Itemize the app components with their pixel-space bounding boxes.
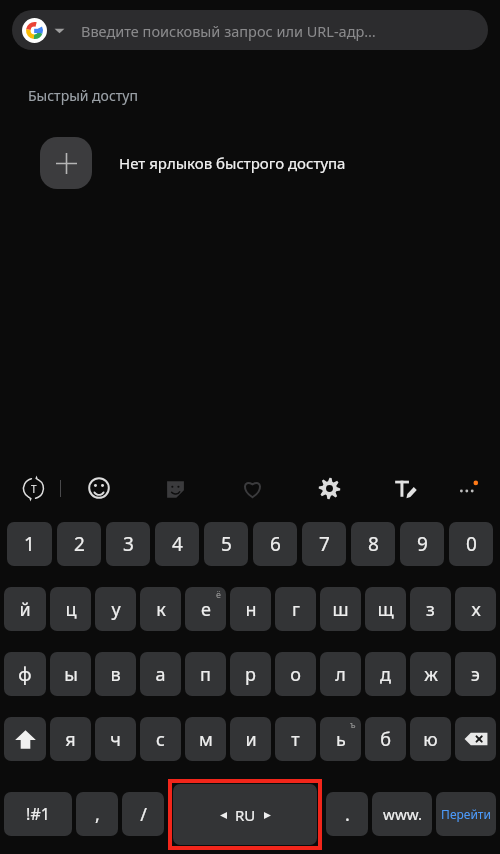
- button[interactable]: 7: [302, 522, 346, 566]
- staticText: п: [200, 662, 211, 687]
- button[interactable]: !#1: [4, 792, 72, 836]
- staticText: 6: [270, 531, 281, 557]
- button[interactable]: Настройки: [310, 468, 348, 508]
- button[interactable]: Добавить ярлык: [40, 137, 92, 189]
- button[interactable]: Перейти: [436, 792, 496, 836]
- button[interactable]: д: [365, 652, 406, 696]
- button[interactable]: е: [185, 587, 226, 631]
- button[interactable]: г: [275, 587, 316, 631]
- button[interactable]: ,: [76, 792, 118, 836]
- button[interactable]: 5: [204, 522, 248, 566]
- staticText: ,: [95, 802, 100, 827]
- button[interactable]: к: [140, 587, 181, 631]
- button[interactable]: 3: [106, 522, 150, 566]
- button[interactable]: а: [140, 652, 181, 696]
- staticText: з: [426, 597, 435, 622]
- staticText: /: [140, 802, 147, 827]
- button[interactable]: у: [95, 587, 136, 631]
- button[interactable]: щ: [365, 587, 406, 631]
- button[interactable]: в: [95, 652, 136, 696]
- staticText: Нет ярлыков быстрого доступа: [119, 153, 346, 173]
- button[interactable]: Редактор текста: [386, 468, 424, 508]
- staticText: к: [156, 597, 166, 622]
- button[interactable]: /: [122, 792, 164, 836]
- staticText: 7: [319, 531, 330, 557]
- staticText: д: [380, 662, 391, 687]
- button[interactable]: GIF: [233, 468, 271, 508]
- staticText: и: [245, 727, 257, 752]
- staticText: л: [335, 662, 346, 687]
- button[interactable]: о: [275, 652, 316, 696]
- button[interactable]: п: [185, 652, 226, 696]
- button[interactable]: х: [455, 587, 496, 631]
- button[interactable]: и: [230, 717, 271, 761]
- button[interactable]: www.: [372, 792, 432, 836]
- staticText: 5: [221, 531, 232, 557]
- button[interactable]: т: [275, 717, 316, 761]
- staticText: э: [471, 662, 480, 687]
- button[interactable]: Backspace: [455, 717, 496, 761]
- button[interactable]: 9: [400, 522, 444, 566]
- staticText: ш: [332, 597, 349, 622]
- staticText: ц: [65, 597, 77, 622]
- staticText: х: [471, 597, 481, 622]
- staticText: www.: [383, 804, 422, 824]
- button[interactable]: 0: [449, 522, 493, 566]
- button[interactable]: Ещё: [446, 468, 490, 508]
- button[interactable]: 8: [351, 522, 395, 566]
- staticText: ь: [336, 727, 346, 752]
- button[interactable]: Введите поисковый запрос или URL-адр…: [12, 10, 488, 50]
- staticText: щ: [377, 597, 394, 622]
- staticText: м: [199, 727, 213, 752]
- button[interactable]: Перевести: [14, 468, 52, 508]
- staticText: в: [110, 662, 121, 687]
- staticText: е: [201, 597, 211, 622]
- staticText: Быстрый доступ: [28, 86, 138, 105]
- button[interactable]: 1: [7, 522, 52, 566]
- button[interactable]: Эмодзи: [80, 468, 118, 508]
- staticText: г: [292, 597, 300, 622]
- staticText: я: [65, 727, 76, 752]
- button[interactable]: Стикеры: [156, 468, 194, 508]
- button[interactable]: ы: [50, 652, 91, 696]
- staticText: ж: [424, 662, 438, 687]
- staticText: ъ: [350, 718, 356, 730]
- staticText: .: [345, 802, 350, 827]
- button[interactable]: й: [4, 587, 46, 631]
- button[interactable]: м: [185, 717, 226, 761]
- staticText: 0: [466, 531, 477, 557]
- staticText: Перейти: [441, 806, 491, 822]
- staticText: Введите поисковый запрос или URL-адр…: [81, 21, 376, 41]
- button[interactable]: ш: [320, 587, 361, 631]
- button[interactable]: ф: [4, 652, 46, 696]
- staticText: а: [155, 662, 166, 687]
- button[interactable]: р: [230, 652, 271, 696]
- button[interactable]: ж: [410, 652, 451, 696]
- button[interactable]: л: [320, 652, 361, 696]
- staticText: 8: [368, 531, 379, 557]
- staticText: ы: [64, 662, 78, 687]
- staticText: ф: [18, 662, 32, 687]
- button[interactable]: ь: [320, 717, 361, 761]
- button[interactable]: ю: [410, 717, 451, 761]
- button[interactable]: ц: [50, 587, 91, 631]
- staticText: T: [31, 482, 37, 496]
- button[interactable]: б: [365, 717, 406, 761]
- button[interactable]: Язык ввода RU: [173, 784, 317, 845]
- button[interactable]: э: [455, 652, 496, 696]
- button[interactable]: 4: [155, 522, 199, 566]
- staticText: 9: [417, 531, 428, 557]
- staticText: 4: [172, 531, 183, 557]
- button[interactable]: з: [410, 587, 451, 631]
- button[interactable]: Shift: [4, 717, 46, 761]
- button[interactable]: с: [140, 717, 181, 761]
- button[interactable]: я: [50, 717, 91, 761]
- button[interactable]: 6: [253, 522, 297, 566]
- staticText: т: [291, 727, 300, 752]
- staticText: 2: [74, 531, 85, 557]
- staticText: у: [111, 597, 121, 622]
- button[interactable]: ч: [95, 717, 136, 761]
- button[interactable]: .: [326, 792, 368, 836]
- button[interactable]: 2: [57, 522, 101, 566]
- button[interactable]: н: [230, 587, 271, 631]
